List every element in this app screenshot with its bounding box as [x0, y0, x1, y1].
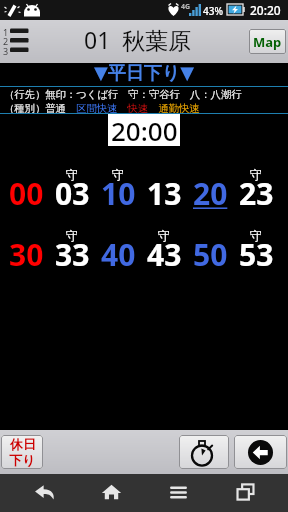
button[interactable]: ▼平日下り▼	[0, 63, 288, 86]
button[interactable]: 守	[49, 167, 95, 228]
button[interactable]: 守	[233, 167, 279, 228]
staticText: 3	[3, 45, 9, 57]
button[interactable]: 守	[233, 228, 279, 289]
staticText: （行先）無印：つくば行 守：守谷行 八：八潮行	[4, 87, 242, 101]
staticText: 2	[3, 35, 9, 47]
staticText: 休日	[10, 436, 36, 452]
button[interactable]: 50	[187, 228, 233, 289]
staticText: 33	[55, 234, 90, 275]
staticText: 30	[9, 234, 44, 275]
button[interactable]: Menu	[145, 474, 212, 512]
staticText: 13	[147, 173, 182, 214]
button[interactable]: Back	[234, 435, 287, 469]
staticText: 53	[239, 234, 274, 275]
staticText: 守	[250, 167, 262, 182]
button[interactable]: Recent apps	[212, 474, 279, 512]
button[interactable]: 休日	[1, 435, 43, 469]
staticText: 43	[147, 234, 182, 275]
staticText: 4G	[181, 2, 191, 12]
button[interactable]: Map	[249, 29, 286, 54]
button[interactable]: 00	[4, 167, 49, 228]
staticText: 守	[158, 228, 170, 243]
staticText: 23	[239, 173, 274, 214]
staticText: 守	[112, 167, 124, 182]
staticText: 01 秋葉原	[84, 24, 192, 55]
button[interactable]: 13	[141, 167, 187, 228]
staticText: 20	[193, 173, 228, 214]
button[interactable]: 守	[49, 228, 95, 289]
staticText: （種別）普通 区間快速 快速 通勤快速	[4, 101, 200, 113]
staticText: 守	[250, 228, 262, 243]
staticText: 40	[101, 234, 136, 275]
button[interactable]: 20	[187, 167, 233, 228]
button[interactable]: 守	[141, 228, 187, 289]
button[interactable]: Station list	[0, 20, 34, 63]
staticText: 下り	[9, 452, 36, 468]
staticText: 1	[3, 26, 9, 38]
button[interactable]: Home	[78, 474, 145, 512]
staticText: ▼平日下り▼	[94, 62, 195, 85]
staticText: 守	[66, 167, 78, 182]
staticText: Map	[253, 33, 282, 51]
button[interactable]: 守	[95, 167, 141, 228]
staticText: 10	[101, 173, 136, 214]
staticText: 03	[55, 173, 90, 214]
staticText: 00	[9, 173, 44, 214]
staticText: 守	[66, 228, 78, 243]
staticText: 43%	[203, 4, 223, 18]
button[interactable]: Stopwatch	[179, 435, 229, 469]
button[interactable]: Back	[10, 474, 78, 512]
button[interactable]: 40	[95, 228, 141, 289]
staticText: 20:20	[250, 2, 281, 18]
staticText: 50	[193, 234, 228, 275]
button[interactable]: 30	[4, 228, 49, 289]
staticText: 20:00	[111, 113, 178, 145]
